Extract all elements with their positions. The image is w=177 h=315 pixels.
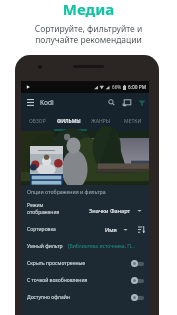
button[interactable]: Доступно офлайн (21, 289, 149, 306)
button[interactable]: Cast to device (119, 95, 134, 110)
button[interactable]: Умный фильтр (21, 238, 149, 255)
staticText: Значки Фанарт (89, 207, 131, 215)
staticText: Сортировка (27, 226, 56, 233)
staticText: 6:00 PM (128, 84, 147, 91)
button[interactable]: Filter (134, 95, 149, 110)
button[interactable]: Скрыть просмотренные (21, 255, 149, 272)
staticText: Kodi (40, 98, 54, 107)
button[interactable]: ОБЗОР (21, 112, 53, 131)
button[interactable]: Sort order (137, 225, 146, 234)
button[interactable]: С точкой возобновления (21, 272, 149, 289)
button[interactable]: Сортировка (21, 221, 149, 238)
staticText: С точкой возобновления (27, 277, 88, 284)
staticText: Режим отображения (27, 202, 60, 215)
staticText: 66% (112, 84, 122, 90)
staticText: МЕТКИ (124, 118, 142, 125)
staticText: Доступно офлайн (27, 294, 70, 301)
staticText: Опции отображения и фильтра (27, 188, 106, 195)
staticText: ЖАНРЫ (91, 118, 111, 125)
button[interactable]: ЖАНРЫ (85, 112, 117, 131)
button[interactable]: МЕТКИ (117, 112, 149, 131)
staticText: ФИЛЬМЫ (57, 118, 81, 125)
staticText: Имя (105, 226, 117, 234)
staticText: ОБЗОР (29, 118, 46, 125)
button[interactable]: Open navigation menu (25, 97, 36, 108)
staticText: Скрыть просмотренные (27, 260, 86, 267)
button[interactable]: Режим отображения (21, 200, 149, 221)
staticText: [Библиотека источника, П... (68, 243, 135, 250)
staticText: Умный фильтр (27, 243, 63, 250)
button[interactable]: ФИЛЬМЫ (53, 112, 85, 131)
button[interactable]: Search (104, 95, 119, 110)
staticText: Медиа (0, 0, 177, 19)
staticText: Сортируйте, фильтруйте и получайте реком… (0, 23, 177, 45)
